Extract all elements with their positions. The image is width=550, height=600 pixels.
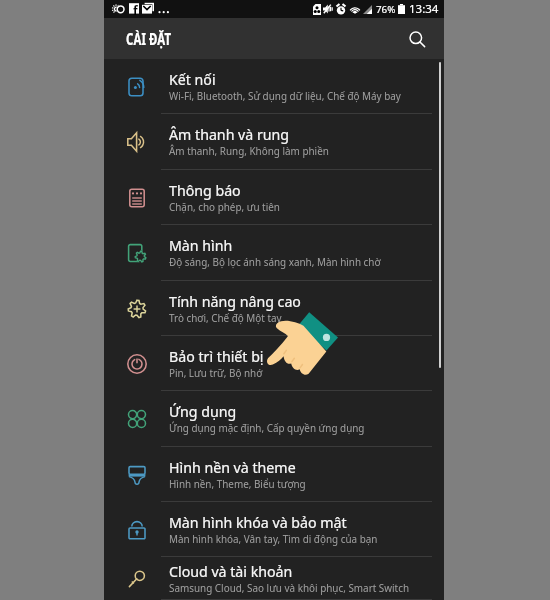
staticText: Wi-Fi, Bluetooth, Sử dụng dữ liệu, Chế đ… — [169, 89, 401, 102]
staticText: Chặn, cho phép, ưu tiên — [169, 200, 280, 213]
staticText: CÀI ĐẶT — [126, 28, 171, 49]
staticText: 76% — [376, 3, 396, 16]
staticText: Ứng dụng — [169, 402, 237, 421]
staticText: Hình nền, Theme, Biểu tượng — [169, 477, 306, 490]
button[interactable]: Kết nối — [104, 59, 444, 114]
staticText: Bảo trì thiết bị — [169, 347, 264, 366]
staticText: Ứng dụng mặc định, Cấp quyền ứng dụng — [169, 421, 365, 434]
staticText: Màn hình khóa, Vân tay, Tìm di động của … — [169, 532, 378, 545]
staticText: Samsung Cloud, Sao lưu và khôi phục, Sma… — [169, 581, 410, 594]
staticText: Âm thanh và rung — [169, 125, 290, 144]
staticText: Pin, Lưu trữ, Bộ nhớ — [169, 366, 263, 379]
button[interactable]: Màn hình khóa và bảo mật — [104, 502, 444, 557]
button[interactable]: Tính năng nâng cao — [104, 281, 444, 336]
staticText: Trò chơi, Chế độ Một tay — [169, 311, 282, 324]
staticText: Tính năng nâng cao — [169, 292, 301, 311]
button[interactable]: Thông báo — [104, 170, 444, 225]
staticText: Độ sáng, Bộ lọc ánh sáng xanh, Màn hình … — [169, 255, 381, 268]
staticText: Kết nối — [169, 70, 216, 89]
button[interactable]: Ứng dụng — [104, 391, 444, 447]
button[interactable]: Màn hình — [104, 225, 444, 281]
staticText: Màn hình khóa và bảo mật — [169, 513, 347, 532]
button[interactable]: Cloud và tài khoản — [104, 557, 444, 600]
staticText: Thông báo — [169, 181, 241, 200]
staticText: 13:34 — [409, 1, 439, 17]
button[interactable]: Search — [402, 24, 432, 54]
staticText: Hình nền và theme — [169, 458, 296, 477]
button[interactable]: Âm thanh và rung — [104, 114, 444, 170]
button[interactable]: Bảo trì thiết bị — [104, 336, 444, 391]
staticText: Âm thanh, Rung, Không làm phiền — [169, 144, 329, 157]
staticText: Màn hình — [169, 236, 233, 255]
staticText: Cloud và tài khoản — [169, 562, 293, 581]
button[interactable]: Hình nền và theme — [104, 447, 444, 502]
staticText: f — [133, 2, 138, 18]
